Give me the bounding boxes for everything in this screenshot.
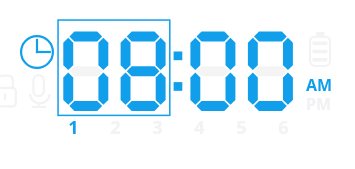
staticText: PM (306, 93, 332, 115)
button[interactable]: 3 (136, 115, 178, 135)
staticText: 5 (236, 115, 247, 135)
button[interactable]: 2 (94, 115, 136, 135)
button[interactable]: Microphone (29, 74, 49, 109)
staticText: 6 (278, 115, 289, 135)
button[interactable]: 1 (52, 115, 94, 135)
button[interactable]: 6 (262, 115, 304, 135)
button[interactable]: 5 (220, 115, 262, 135)
staticText: 3 (152, 115, 163, 135)
button[interactable]: 4 (178, 115, 220, 135)
button[interactable]: PM (306, 93, 332, 115)
staticText: 2 (110, 115, 121, 135)
button[interactable]: AM (306, 74, 333, 96)
staticText: 1 (68, 115, 79, 135)
button[interactable]: Clock (20, 35, 54, 69)
button[interactable]: Lock (0, 74, 17, 107)
staticText: 4 (194, 115, 205, 135)
staticText: AM (306, 74, 333, 96)
button[interactable]: Battery (309, 32, 331, 67)
